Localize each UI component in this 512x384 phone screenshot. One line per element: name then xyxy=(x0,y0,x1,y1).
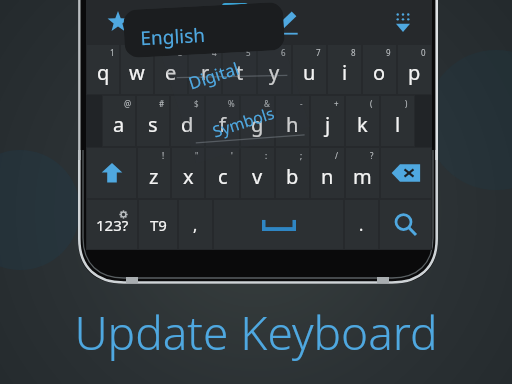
staticText: : xyxy=(265,150,268,161)
staticText: y xyxy=(269,59,280,86)
button[interactable]: v xyxy=(241,148,274,198)
button[interactable]: m xyxy=(346,148,379,198)
staticText: " xyxy=(195,150,199,161)
staticText: q xyxy=(97,59,110,86)
button[interactable]: u xyxy=(293,45,326,94)
button[interactable]: Search xyxy=(380,200,431,249)
staticText: n xyxy=(321,163,334,190)
staticText: ; xyxy=(300,150,303,161)
staticText: T9 xyxy=(150,215,167,235)
staticText: % xyxy=(228,98,235,109)
staticText: j xyxy=(325,111,331,138)
button[interactable]: r xyxy=(189,45,221,94)
button[interactable]: j xyxy=(311,96,344,146)
staticText: t xyxy=(236,59,244,86)
staticText: 1 xyxy=(110,47,115,58)
button[interactable]: q xyxy=(87,45,119,94)
staticText: . xyxy=(359,214,364,236)
button[interactable]: n xyxy=(311,148,344,198)
staticText: z xyxy=(149,163,159,190)
staticText: $ xyxy=(194,98,199,109)
button[interactable]: k xyxy=(346,96,379,146)
staticText: 7 xyxy=(316,47,321,58)
staticText: o xyxy=(373,59,386,86)
staticText: @ xyxy=(124,98,132,109)
button[interactable]: Shift xyxy=(87,148,136,198)
button[interactable]: f xyxy=(206,96,239,146)
button[interactable]: g xyxy=(241,96,274,146)
button[interactable]: b xyxy=(276,148,309,198)
button[interactable]: c xyxy=(206,148,239,198)
staticText: p xyxy=(408,59,421,86)
button[interactable]: . xyxy=(345,200,378,249)
staticText: 9 xyxy=(386,47,391,58)
staticText: 0 xyxy=(421,47,426,58)
staticText: f xyxy=(219,111,226,138)
staticText: d xyxy=(181,111,194,138)
button[interactable]: h xyxy=(276,96,309,146)
staticText: l xyxy=(395,111,401,138)
staticText: v xyxy=(252,163,263,190)
button[interactable]: T9 xyxy=(139,200,177,249)
staticText: ? xyxy=(370,150,374,161)
button[interactable]: a xyxy=(103,96,135,146)
button[interactable]: d xyxy=(171,96,204,146)
staticText: 6 xyxy=(281,47,286,58)
staticText: g xyxy=(251,111,264,138)
staticText: r xyxy=(201,59,210,86)
button[interactable]: y xyxy=(258,45,291,94)
button[interactable]: English xyxy=(123,2,285,58)
button[interactable]: w xyxy=(121,45,153,94)
staticText: 5 xyxy=(246,47,251,58)
button[interactable]: l xyxy=(381,96,414,146)
staticText: w xyxy=(129,59,145,86)
button[interactable]: Hide keyboard xyxy=(374,0,432,44)
staticText: k xyxy=(357,111,368,138)
staticText: , xyxy=(193,214,198,236)
staticText: Update Keyboard xyxy=(74,301,438,364)
button[interactable]: 123? xyxy=(87,200,137,249)
button[interactable]: t xyxy=(223,45,256,94)
staticText: m xyxy=(353,163,372,190)
button[interactable]: Backspace xyxy=(381,148,431,198)
button[interactable]: e xyxy=(155,45,187,94)
button[interactable]: x xyxy=(172,148,204,198)
staticText: x xyxy=(183,163,194,190)
button[interactable]: z xyxy=(138,148,170,198)
staticText: ) xyxy=(405,98,408,109)
button[interactable]: Theme xyxy=(211,0,259,44)
staticText: u xyxy=(303,59,316,86)
staticText: # xyxy=(159,98,165,109)
staticText: a xyxy=(113,111,125,138)
staticText: 4 xyxy=(212,47,217,58)
staticText: 2 xyxy=(144,47,149,58)
staticText: ( xyxy=(370,98,373,109)
staticText: Digital xyxy=(185,57,242,94)
staticText: + xyxy=(334,98,339,109)
button[interactable]: p xyxy=(398,45,431,94)
button[interactable]: s xyxy=(137,96,169,146)
button[interactable]: o xyxy=(363,45,396,94)
staticText: s xyxy=(148,111,158,138)
staticText: English xyxy=(140,22,206,51)
staticText: / xyxy=(335,150,338,161)
staticText: ! xyxy=(162,150,165,161)
staticText: ' xyxy=(231,150,233,161)
staticText: h xyxy=(286,111,299,138)
staticText: 3 xyxy=(178,47,183,58)
staticText: 123? xyxy=(96,215,129,235)
button[interactable]: Edit xyxy=(259,0,313,44)
staticText: 8 xyxy=(351,47,356,58)
staticText: - xyxy=(300,98,303,109)
staticText: Symbols xyxy=(210,102,277,142)
button[interactable]: , xyxy=(179,200,212,249)
staticText: c xyxy=(218,163,228,190)
button[interactable]: Favorites xyxy=(86,0,150,44)
staticText: e xyxy=(165,59,177,86)
button[interactable]: i xyxy=(328,45,361,94)
staticText: & xyxy=(264,98,270,109)
button[interactable]: Digital xyxy=(162,20,310,164)
staticText: i xyxy=(342,59,348,86)
staticText: b xyxy=(286,163,299,190)
button[interactable]: Space xyxy=(214,200,343,249)
